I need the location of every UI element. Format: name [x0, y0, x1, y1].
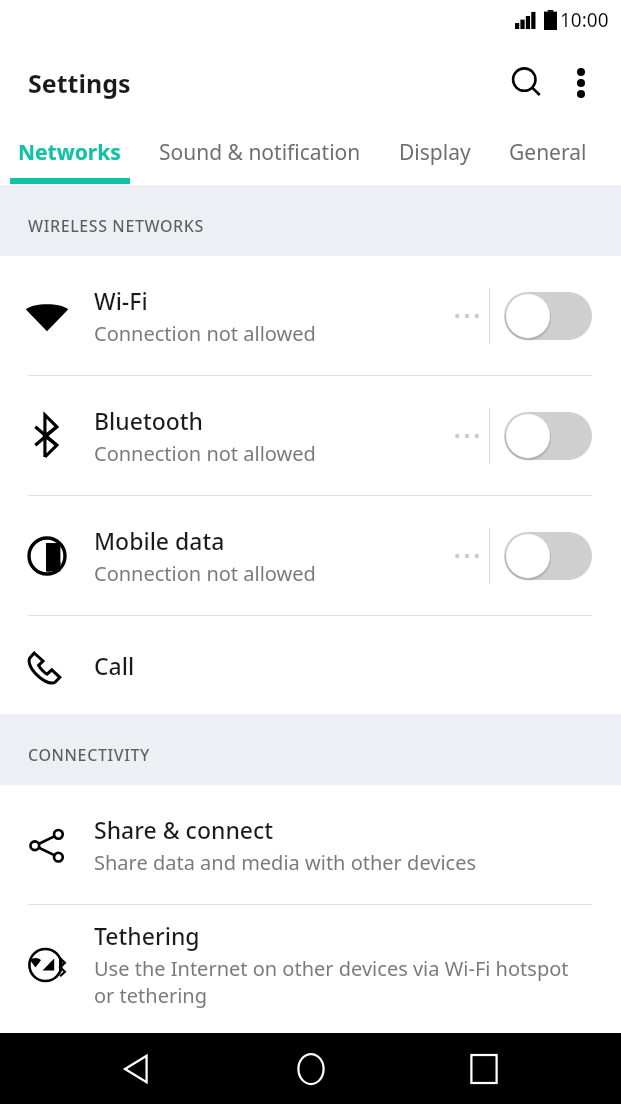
button[interactable]: General — [501, 132, 595, 173]
button[interactable]: Call — [0, 616, 621, 714]
staticText: CONNECTIVITY — [28, 744, 150, 766]
staticText: 10:00 — [560, 7, 609, 33]
staticText: Display — [399, 138, 471, 167]
button[interactable]: Bluetooth toggle — [504, 412, 592, 460]
staticText: Settings — [28, 66, 131, 100]
staticText: Mobile data — [94, 525, 225, 556]
staticText: Connection not allowed — [94, 560, 316, 587]
button[interactable]: Wi-Fi toggle — [504, 292, 592, 340]
staticText: Networks — [18, 138, 121, 167]
staticText: Wi-Fi — [94, 285, 148, 316]
button[interactable]: Share & connect — [0, 785, 621, 904]
button[interactable]: Wi-Fi — [0, 256, 621, 375]
staticText: Tethering — [94, 920, 200, 951]
button[interactable]: More options — [555, 57, 607, 109]
staticText: Connection not allowed — [94, 320, 316, 347]
button[interactable]: Search — [499, 55, 555, 111]
button[interactable]: Mobile data — [0, 496, 621, 615]
button[interactable]: Display — [391, 132, 479, 173]
button[interactable]: Sound & notification — [151, 132, 369, 173]
staticText: Share data and media with other devices — [94, 849, 477, 876]
staticText: Use the Internet on other devices via Wi… — [94, 955, 592, 1009]
button[interactable]: Recent apps — [447, 1033, 521, 1104]
staticText: General — [509, 138, 587, 167]
button[interactable]: Bluetooth — [0, 376, 621, 495]
button[interactable]: Back — [100, 1033, 174, 1104]
staticText: Call — [94, 650, 135, 681]
staticText: Connection not allowed — [94, 440, 316, 467]
staticText: WIRELESS NETWORKS — [28, 215, 204, 237]
staticText: Share & connect — [94, 814, 274, 845]
button[interactable]: Home — [274, 1033, 348, 1104]
button[interactable]: Networks — [10, 132, 129, 173]
staticText: Bluetooth — [94, 405, 204, 436]
button[interactable]: Tethering — [0, 905, 621, 1024]
staticText: Sound & notification — [159, 138, 361, 167]
button[interactable]: Mobile data toggle — [504, 532, 592, 580]
